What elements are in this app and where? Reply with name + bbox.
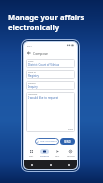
staticText: Files	[29, 155, 34, 158]
staticText: Manage your affairs	[8, 12, 85, 22]
staticText: Settings	[67, 155, 75, 158]
button[interactable]: From	[26, 59, 75, 68]
staticText: From	[28, 60, 34, 63]
staticText: Compose	[33, 51, 49, 56]
button[interactable]: Send to	[26, 70, 75, 79]
button[interactable]: Sent	[51, 147, 64, 160]
staticText: Message	[28, 93, 38, 96]
button[interactable]: Compose	[38, 147, 51, 160]
staticText: District Court of Vilnius	[28, 63, 60, 67]
staticText: SEND	[64, 140, 71, 144]
button[interactable]: Subject	[26, 81, 75, 90]
staticText: 9:41	[27, 44, 32, 47]
staticText: electronically	[8, 22, 60, 32]
button[interactable]: Message	[26, 92, 75, 132]
staticText: Subject	[28, 82, 36, 85]
staticText: 0/500	[68, 128, 74, 131]
button[interactable]: SEND	[60, 138, 75, 145]
button[interactable]: Back	[26, 50, 32, 56]
staticText: Registry	[28, 74, 40, 78]
staticText: Compose	[40, 155, 49, 158]
staticText: Send to	[28, 71, 36, 74]
button[interactable]: Files	[24, 147, 38, 160]
staticText: ADD ATTACHMENT	[40, 140, 57, 143]
button[interactable]: Settings	[64, 147, 77, 160]
staticText: Sent	[55, 155, 60, 158]
staticText: Inquiry	[28, 85, 38, 89]
staticText: I would like to request	[28, 96, 59, 100]
button[interactable]: ADD ATTACHMENT	[35, 138, 59, 145]
